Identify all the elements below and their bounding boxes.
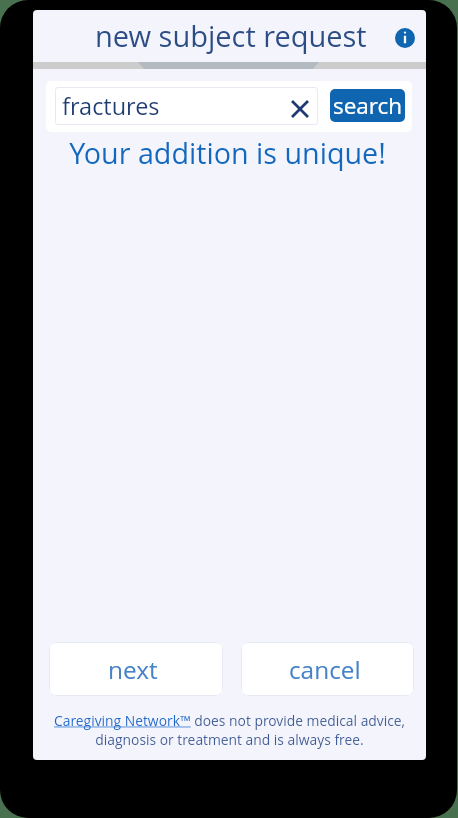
button[interactable]: search <box>330 89 405 122</box>
staticText: search <box>333 90 403 121</box>
staticText: next <box>108 653 158 686</box>
button[interactable]: Clear search text <box>286 95 314 123</box>
button[interactable]: cancel <box>241 642 414 696</box>
staticText: Caregiving Network™ does not provide med… <box>33 711 426 749</box>
staticText: cancel <box>289 653 361 686</box>
button[interactable]: Information <box>385 18 425 58</box>
staticText: Your addition is unique! <box>33 133 424 172</box>
staticText: fractures <box>62 90 160 122</box>
button[interactable]: next <box>49 642 223 696</box>
button[interactable]: fractures <box>55 87 318 125</box>
staticText: new subject request <box>95 16 367 55</box>
